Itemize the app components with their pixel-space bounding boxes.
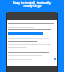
staticText: Easy to install, instantly xyxy=(13,1,51,5)
staticText: ready to go xyxy=(23,4,42,8)
